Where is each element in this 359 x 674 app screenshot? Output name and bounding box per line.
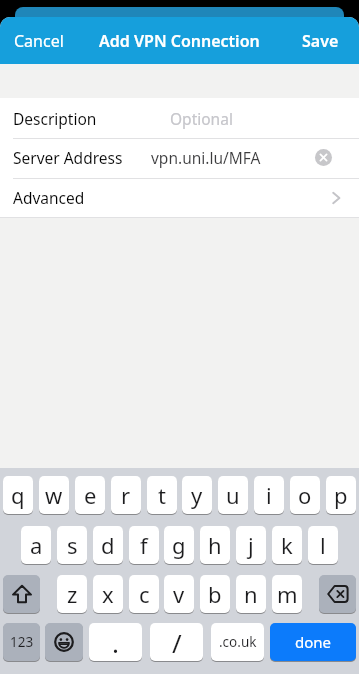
button[interactable]: .: [89, 623, 142, 661]
button[interactable]: z: [57, 575, 87, 613]
button[interactable]: r: [111, 476, 141, 514]
staticText: w: [45, 480, 63, 510]
staticText: .co.uk: [219, 633, 257, 651]
staticText: vpn.uni.lu/MFA: [151, 147, 261, 168]
button[interactable]: c: [129, 575, 159, 613]
button[interactable]: e: [75, 476, 105, 514]
staticText: d: [101, 530, 115, 560]
staticText: r: [121, 480, 131, 510]
button[interactable]: j: [236, 526, 266, 564]
staticText: c: [139, 579, 150, 609]
button[interactable]: l: [308, 526, 338, 564]
button[interactable]: k: [272, 526, 302, 564]
button[interactable]: x: [93, 575, 123, 613]
button[interactable]: [45, 623, 83, 661]
button[interactable]: g: [164, 526, 194, 564]
staticText: m: [277, 579, 298, 609]
staticText: Cancel: [14, 30, 64, 52]
staticText: Save: [302, 30, 339, 52]
staticText: g: [172, 530, 186, 560]
staticText: v: [173, 579, 185, 609]
button[interactable]: m: [272, 575, 302, 613]
staticText: s: [67, 530, 78, 560]
staticText: f: [140, 530, 148, 560]
button[interactable]: done: [270, 623, 356, 661]
button[interactable]: s: [57, 526, 87, 564]
button[interactable]: i: [254, 476, 284, 514]
staticText: Optional: [170, 108, 233, 129]
button[interactable]: t: [147, 476, 177, 514]
button[interactable]: u: [218, 476, 248, 514]
button[interactable]: Cancel: [8, 24, 70, 58]
staticText: 123: [10, 633, 34, 651]
button[interactable]: n: [236, 575, 266, 613]
button[interactable]: d: [93, 526, 123, 564]
button[interactable]: Server Address: [0, 138, 359, 177]
staticText: k: [281, 530, 293, 560]
staticText: e: [84, 480, 97, 510]
button[interactable]: Description: [0, 98, 359, 138]
staticText: o: [298, 480, 312, 510]
button[interactable]: o: [290, 476, 320, 514]
staticText: q: [11, 480, 25, 510]
button[interactable]: q: [3, 476, 33, 514]
staticText: y: [191, 480, 203, 510]
staticText: done: [295, 632, 332, 652]
staticText: /: [172, 625, 182, 660]
button[interactable]: .co.uk: [211, 623, 264, 661]
staticText: n: [244, 579, 258, 609]
button[interactable]: 123: [3, 623, 40, 661]
staticText: h: [208, 530, 222, 560]
staticText: z: [67, 579, 78, 609]
button[interactable]: p: [326, 476, 356, 514]
staticText: t: [158, 480, 166, 510]
button[interactable]: /: [150, 623, 203, 661]
staticText: l: [320, 530, 326, 560]
button[interactable]: a: [21, 526, 51, 564]
button[interactable]: y: [182, 476, 212, 514]
staticText: Server Address: [13, 147, 123, 168]
staticText: Add VPN Connection: [99, 30, 260, 52]
staticText: Description: [13, 108, 97, 129]
staticText: u: [226, 480, 240, 510]
staticText: b: [208, 579, 222, 609]
button[interactable]: Advanced: [0, 178, 359, 217]
button[interactable]: f: [129, 526, 159, 564]
staticText: j: [248, 530, 254, 560]
button[interactable]: w: [39, 476, 69, 514]
staticText: Advanced: [13, 187, 85, 208]
staticText: a: [30, 530, 43, 560]
staticText: .: [112, 625, 119, 660]
button[interactable]: b: [200, 575, 230, 613]
staticText: i: [266, 480, 272, 510]
staticText: p: [334, 480, 348, 510]
button[interactable]: h: [200, 526, 230, 564]
button[interactable]: [3, 575, 40, 613]
staticText: x: [102, 579, 114, 609]
button[interactable]: v: [164, 575, 194, 613]
button[interactable]: [319, 575, 356, 613]
button[interactable]: Save: [296, 24, 345, 58]
